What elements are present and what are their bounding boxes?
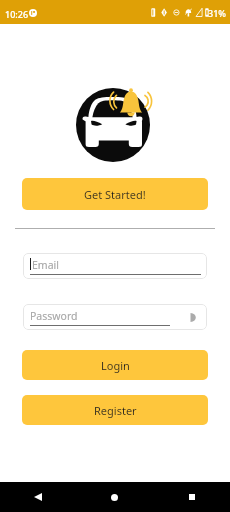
- button[interactable]: Home: [76, 482, 153, 512]
- button[interactable]: Register: [22, 395, 208, 425]
- staticText: Password: [30, 309, 78, 323]
- staticText: Email: [32, 258, 59, 272]
- staticText: Login: [101, 358, 130, 373]
- staticText: 31%: [208, 7, 226, 19]
- button[interactable]: Recent apps: [153, 482, 230, 512]
- staticText: Register: [94, 403, 137, 418]
- button[interactable]: Login: [22, 350, 208, 380]
- button[interactable]: Show password: [187, 310, 201, 324]
- button[interactable]: Email: [23, 253, 207, 279]
- button[interactable]: Back: [0, 482, 76, 512]
- staticText: 10:26: [5, 8, 29, 20]
- staticText: Get Started!: [84, 187, 146, 202]
- button[interactable]: Get Started!: [22, 178, 208, 210]
- button[interactable]: Password: [23, 304, 207, 330]
